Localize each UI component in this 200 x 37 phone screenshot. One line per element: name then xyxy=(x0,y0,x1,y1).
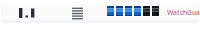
staticText: WatchGuard xyxy=(167,8,200,17)
